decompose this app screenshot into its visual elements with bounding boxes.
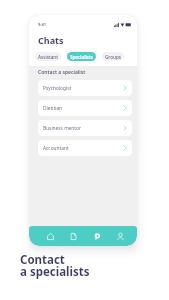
- button[interactable]: Dietitian: [38, 100, 132, 116]
- button[interactable]: Home: [42, 228, 58, 244]
- button[interactable]: Profile: [112, 228, 128, 244]
- staticText: Chats: [38, 34, 64, 46]
- button[interactable]: Assistant: [35, 52, 61, 61]
- staticText: Specialists: [70, 54, 93, 60]
- button[interactable]: Specialists: [67, 52, 96, 61]
- staticText: Psychologist: [43, 85, 72, 92]
- staticText: Business mentor: [43, 125, 81, 132]
- staticText: Contact a specialist: [38, 69, 86, 76]
- button[interactable]: Chats: [89, 228, 105, 244]
- button[interactable]: Groups: [102, 52, 124, 61]
- button[interactable]: Accountant: [38, 140, 132, 156]
- staticText: Accountant: [43, 145, 69, 152]
- staticText: 9:41: [38, 22, 46, 27]
- staticText: Contact a specialists: [20, 252, 90, 280]
- staticText: Assistant: [38, 54, 58, 60]
- staticText: Dietitian: [43, 105, 63, 112]
- button[interactable]: Documents: [65, 228, 81, 244]
- button[interactable]: Business mentor: [38, 120, 132, 136]
- staticText: Groups: [105, 54, 121, 60]
- button[interactable]: Psychologist: [38, 80, 132, 96]
